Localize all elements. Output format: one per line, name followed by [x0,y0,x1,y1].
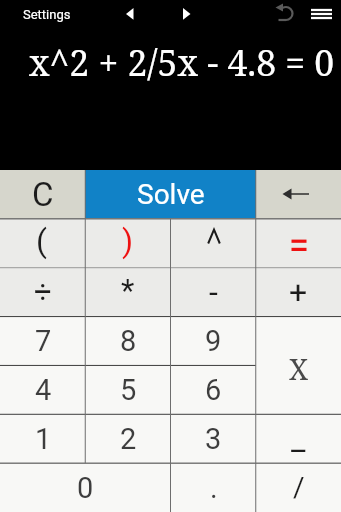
staticText: ( [36,222,47,260]
button[interactable] [270,0,300,28]
staticText: ÷ [34,274,52,310]
button[interactable]: C [0,170,85,218]
button[interactable]: 1 [0,414,86,463]
button[interactable] [305,0,341,28]
button[interactable]: * [86,267,171,316]
button[interactable]: - [171,267,256,316]
button[interactable]: 7 [0,316,86,365]
button[interactable] [171,218,256,267]
staticText: 5 [120,373,137,407]
button[interactable]: 9 [171,316,256,365]
staticText: 8 [120,324,137,358]
staticText: 7 [35,324,52,358]
button[interactable]: 5 [86,365,171,414]
staticText: 3 [205,422,222,456]
button[interactable]: ( [0,218,86,267]
button[interactable] [174,0,200,28]
button[interactable]: 3 [171,414,256,463]
button[interactable]: 4 [0,365,86,414]
button[interactable] [117,0,143,28]
button[interactable]: _ [256,414,341,463]
staticText: _ [291,420,306,458]
staticText: Settings [23,7,71,22]
button[interactable]: 0 [0,463,171,512]
staticText: / [293,471,305,504]
staticText: . [210,471,218,505]
button[interactable]: + [256,267,341,316]
button[interactable] [256,170,341,218]
staticText: 2 [120,422,137,456]
staticText: Solve [137,178,205,211]
staticText: 4 [35,373,52,407]
staticText: - [209,273,218,311]
button[interactable]: Solve [85,170,256,218]
button[interactable] [256,218,341,267]
staticText: 1 [35,422,52,456]
staticText: * [121,272,135,308]
staticText: 6 [205,373,222,407]
staticText: C [32,175,54,214]
button[interactable]: 6 [171,365,256,414]
button[interactable]: . [171,463,256,512]
staticText: 9 [205,324,222,358]
button[interactable]: ÷ [0,267,86,316]
staticText: + [289,273,308,311]
button[interactable]: ) [86,218,171,267]
staticText: X [289,349,309,388]
staticText: 0 [77,471,94,505]
staticText: x^2 + 2/5x - 4.8 = 0 [29,38,335,86]
button[interactable]: Settings [14,3,80,26]
button[interactable]: X [256,316,341,414]
staticText: ) [122,222,134,260]
button[interactable]: x^2 + 2/5x - 4.8 = 0 [0,28,341,170]
button[interactable]: 8 [86,316,171,365]
button[interactable]: 2 [86,414,171,463]
button[interactable]: / [256,463,341,512]
